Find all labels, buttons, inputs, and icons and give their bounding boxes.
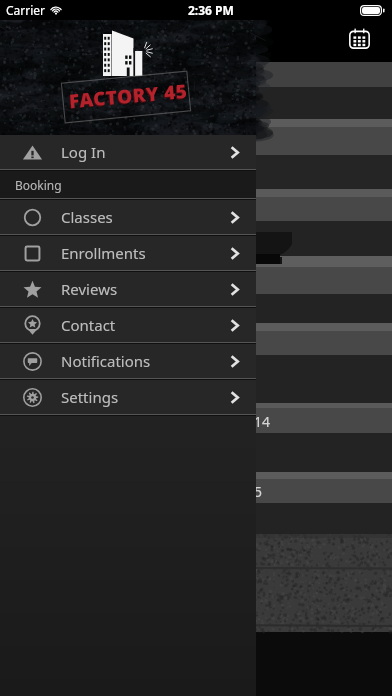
staticText: Notifications <box>61 351 151 371</box>
button[interactable]: Calendar <box>342 21 376 55</box>
staticText: Contact <box>61 315 116 335</box>
button[interactable]: Enrollments <box>0 236 256 270</box>
button[interactable]: Classes <box>0 200 256 234</box>
button[interactable]: Contact <box>0 308 256 342</box>
staticText: 14 <box>254 412 271 431</box>
staticText: Log In <box>61 142 106 162</box>
staticText: FACTORY 45 <box>68 78 189 114</box>
button[interactable]: Reviews <box>0 272 256 306</box>
staticText: 2:36 PM <box>188 2 234 18</box>
staticText: FACTORY 45 <box>67 79 188 115</box>
staticText: Reviews <box>61 279 118 299</box>
button[interactable]: Settings <box>0 380 256 414</box>
staticText: 5 <box>254 482 263 501</box>
staticText: Settings <box>61 387 119 407</box>
staticText: Classes <box>61 207 113 227</box>
button[interactable]: Log In <box>0 135 256 169</box>
staticText: Enrollments <box>61 243 146 263</box>
staticText: Booking <box>15 177 62 193</box>
button[interactable]: Notifications <box>0 344 256 378</box>
staticText: Carrier <box>6 2 46 18</box>
